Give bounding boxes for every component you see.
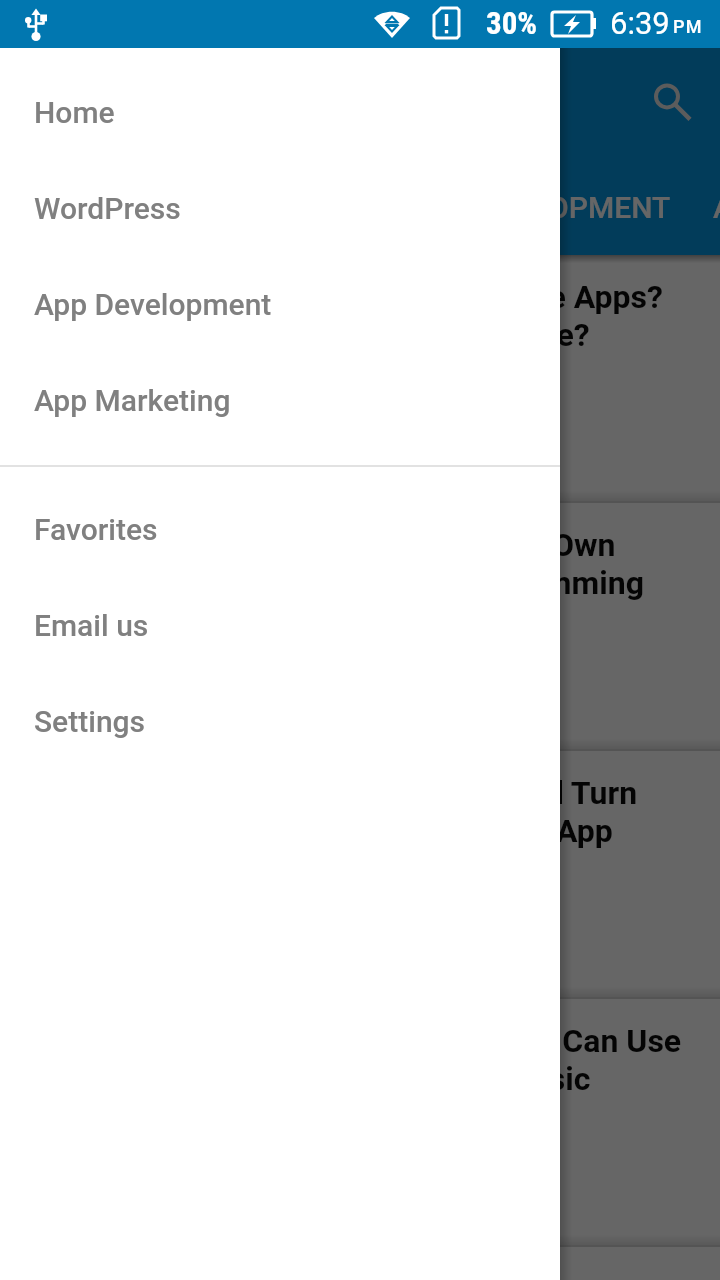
button[interactable]: WordPress (0, 160, 560, 256)
staticText: Settings (34, 704, 146, 739)
button[interactable]: App Development (0, 256, 560, 352)
staticText: 30% (486, 5, 538, 41)
staticText: How to Build a Website That Is Your Own (32, 526, 616, 564)
button[interactable]: APP DEVELOPMENT (373, 160, 692, 255)
staticText: 6:39 (610, 5, 670, 41)
staticText: Home (34, 95, 115, 130)
button[interactable]: Favorites (0, 481, 560, 577)
staticText: to Build Your Apps Much More in Basic (32, 1060, 591, 1098)
staticText: How Can You Make Money on Mobile Apps? (32, 278, 663, 316)
staticText: APP DEVELOPMENT (394, 190, 671, 225)
staticText: And Where Should You Start Out Here? (32, 316, 590, 354)
staticText: WordPress (34, 191, 181, 226)
button[interactable]: APP MARKETING (692, 160, 720, 255)
staticText: The Top New Ideas That You Use and Turn (32, 774, 638, 812)
button[interactable]: WORDPRESS (154, 160, 373, 255)
staticText: Favorites (34, 512, 158, 547)
button[interactable]: Open navigation drawer (0, 48, 112, 160)
button[interactable]: Settings (0, 673, 560, 769)
button[interactable]: The Very Best Frameworks That You Can Us… (0, 999, 720, 1247)
staticText: App Development (34, 287, 272, 322)
button[interactable]: Search (624, 48, 720, 160)
staticText: APP MARKETING (713, 190, 720, 225)
staticText: Common Mistakes to Avoid When You (32, 1270, 580, 1280)
staticText: Email us (34, 608, 149, 643)
button[interactable]: How to Build a Website That Is Your Own (0, 503, 720, 751)
button[interactable]: Home (0, 64, 560, 160)
staticText: App Marketing (34, 383, 231, 418)
staticText: The Very Best Frameworks That You Can Us… (32, 1022, 682, 1060)
staticText: PM (673, 16, 703, 37)
button[interactable]: Email us (0, 577, 560, 673)
staticText: Without Ever Learning Some Programming (32, 564, 644, 602)
staticText: AppBlog (112, 81, 264, 128)
button[interactable]: The Top New Ideas That You Use and Turn (0, 751, 720, 999)
button[interactable]: App Marketing (0, 352, 560, 448)
button[interactable]: Common Mistakes to Avoid When You (0, 1247, 720, 1280)
button[interactable]: How Can You Make Money on Mobile Apps? (0, 255, 720, 503)
staticText: WORDPRESS (175, 190, 352, 225)
staticText: Into a Great Looking Modern Mobile App (32, 812, 613, 850)
